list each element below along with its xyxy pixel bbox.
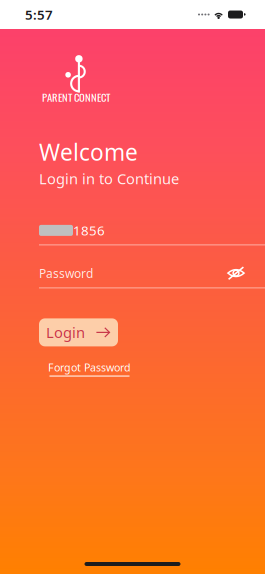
- staticText: Password: [39, 265, 93, 281]
- button[interactable]: Forgot Password: [48, 360, 131, 377]
- staticText: 5:57: [25, 6, 53, 23]
- staticText: Welcome: [39, 137, 138, 167]
- staticText: PARENT CONNECT: [42, 89, 110, 105]
- staticText: 1856: [73, 221, 105, 239]
- staticText: Login: [46, 323, 85, 342]
- staticText: Forgot Password: [48, 360, 131, 375]
- button[interactable]: Show password: [227, 266, 265, 281]
- button[interactable]: Login: [39, 318, 118, 346]
- staticText: Login in to Continue: [39, 169, 179, 188]
